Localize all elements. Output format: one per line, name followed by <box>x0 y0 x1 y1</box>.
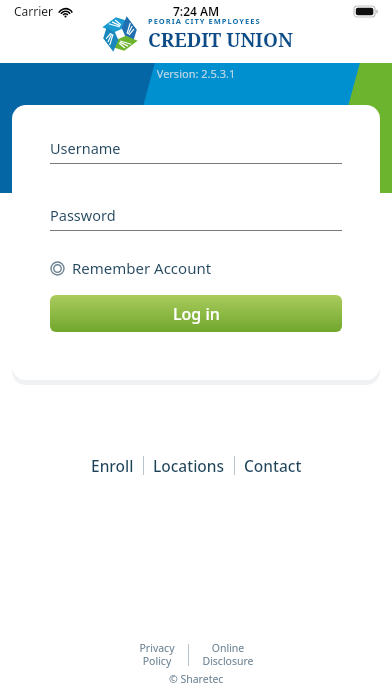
button[interactable]: Remember Account <box>50 256 212 280</box>
button[interactable]: Username <box>50 138 342 164</box>
button[interactable]: Contact <box>235 451 311 480</box>
staticText: PEORIA CITY EMPLOYEES <box>148 16 261 26</box>
staticText: Privacy Policy <box>139 641 175 668</box>
staticText: 7:24 AM <box>173 3 220 19</box>
button[interactable]: Online Disclosure <box>189 641 267 668</box>
staticText: Online Disclosure <box>202 641 254 668</box>
button[interactable]: Enroll <box>82 451 143 480</box>
button[interactable]: Locations <box>144 451 234 480</box>
button[interactable]: Log in <box>50 295 342 332</box>
staticText: Contact <box>244 455 302 476</box>
staticText: Version: 2.5.3.1 <box>0 66 392 81</box>
staticText: Enroll <box>91 455 134 476</box>
staticText: Password <box>50 205 116 225</box>
staticText: Locations <box>153 455 225 476</box>
button[interactable]: Privacy Policy <box>126 641 188 668</box>
staticText: © Sharetec <box>169 672 224 686</box>
staticText: Carrier <box>14 3 54 19</box>
staticText: CREDIT UNION <box>148 27 293 53</box>
staticText: Remember Account <box>72 258 212 278</box>
staticText: Username <box>50 138 121 158</box>
staticText: Log in <box>173 303 220 325</box>
button[interactable]: Password <box>50 205 342 231</box>
